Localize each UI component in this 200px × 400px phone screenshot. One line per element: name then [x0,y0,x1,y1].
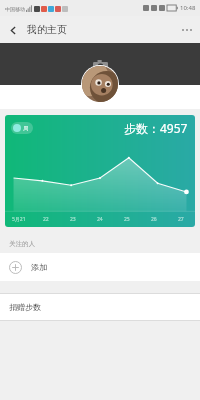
staticText: 23 [70,216,76,223]
button[interactable]: 周 [5,115,195,227]
staticText: 添加 [31,262,47,272]
button[interactable]: 添加 [0,253,200,281]
staticText: 5月21 [12,216,26,223]
staticText: 22 [43,216,49,223]
staticText: 关注的人 [9,240,35,248]
button[interactable]: More options [174,17,200,43]
staticText: 步数：4957 [124,120,188,136]
staticText: 10:48 [180,4,196,12]
button[interactable]: 周 [11,122,33,134]
button[interactable]: Change cover photo [89,54,111,76]
staticText: 25 [124,216,130,223]
button[interactable]: Back [0,17,26,43]
staticText: 26 [151,216,157,223]
button[interactable]: 捐赠步数 [0,294,200,320]
staticText: 周 [23,125,29,132]
staticText: 捐赠步数 [9,302,41,312]
staticText: 24 [97,216,103,223]
button[interactable]: Profile photo [82,66,118,102]
staticText: 中国移动 [5,6,25,12]
staticText: 我的主页 [27,23,67,36]
staticText: 27 [178,216,184,223]
